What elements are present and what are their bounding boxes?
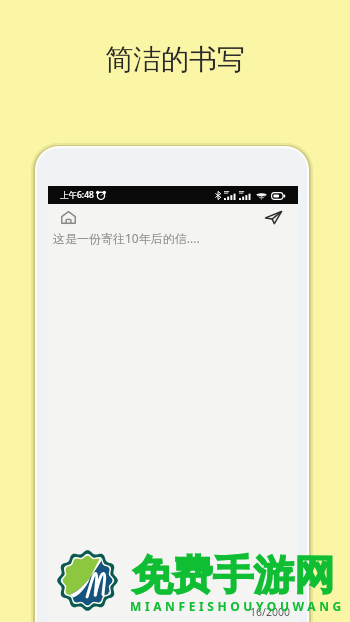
button[interactable]: Home [57, 206, 80, 229]
button[interactable]: Send [261, 205, 285, 229]
staticText: 这是一份寄往10年后的信.... [53, 230, 200, 246]
staticText: MIANFEISHOUYOUWANG [130, 598, 345, 614]
staticText: 上午6:48 [60, 189, 94, 201]
staticText: 16/2000 [250, 605, 290, 619]
staticText: 免费手游网 [132, 550, 335, 601]
staticText: 简洁的书写 [105, 42, 245, 77]
